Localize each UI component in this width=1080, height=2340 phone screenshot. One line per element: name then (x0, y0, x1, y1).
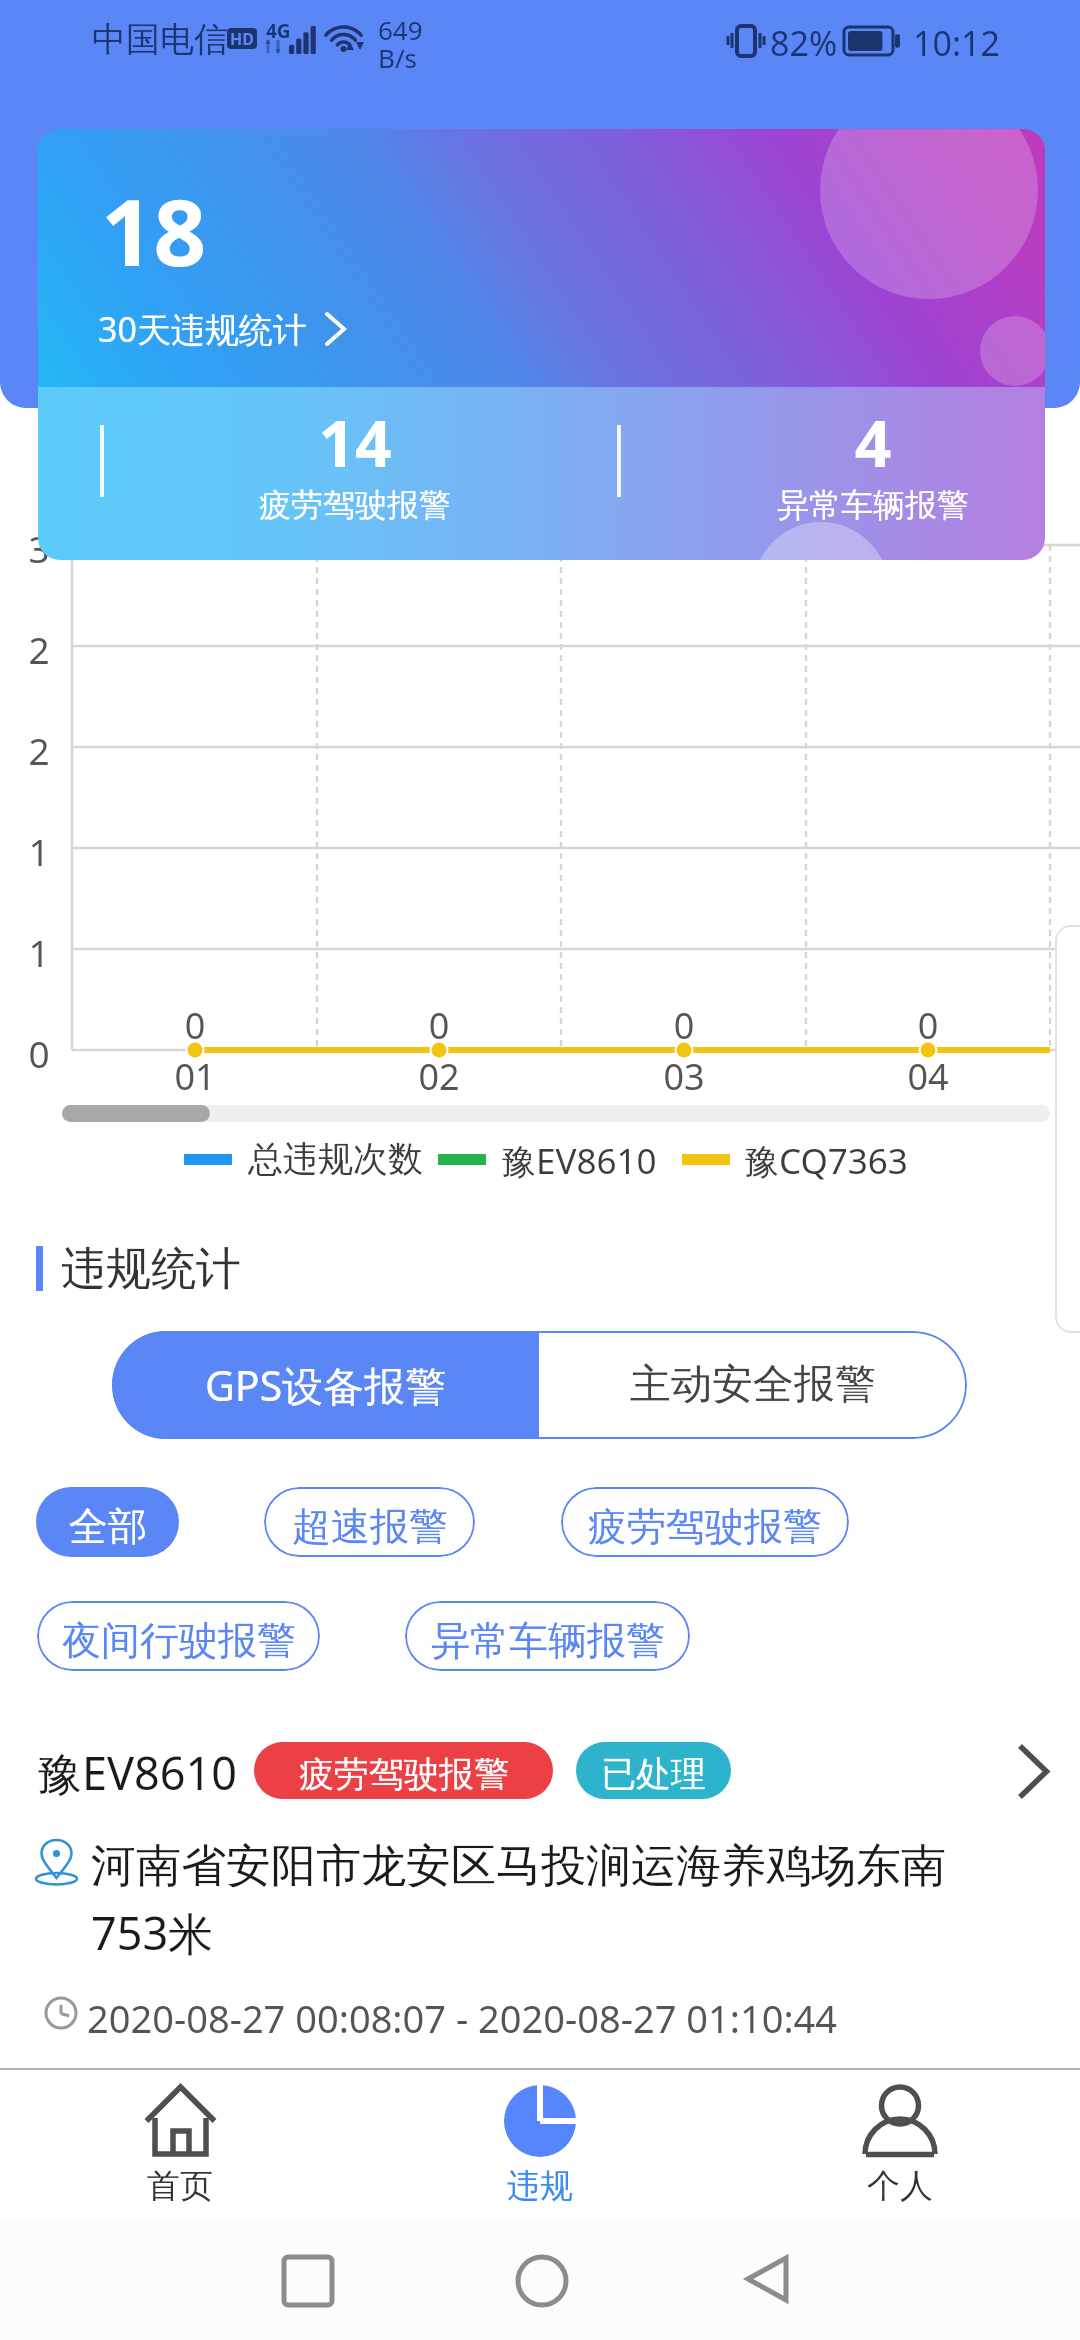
staticText: HD (230, 28, 254, 49)
staticText: 14 (155, 399, 555, 486)
staticText: 02 (389, 1052, 489, 1101)
staticText: 夜间行驶报警 (62, 1616, 296, 1665)
button[interactable]: 全部 (36, 1487, 179, 1557)
staticText: 4 (673, 399, 1045, 486)
staticText: 0 (145, 1001, 245, 1050)
staticText: 河南省安阳市龙安区马投涧运海养鸡场东南753米 (91, 1838, 971, 1963)
staticText: 主动安全报警 (630, 1359, 876, 1411)
staticText: 0 (634, 1001, 734, 1050)
staticText: 2 (24, 624, 54, 674)
staticText: 04 (878, 1052, 978, 1101)
button[interactable]: 疲劳驾驶报警 (561, 1487, 849, 1557)
staticText: 30天违规统计 (98, 306, 307, 352)
staticText: 全部 (69, 1502, 147, 1551)
staticText: 2 (24, 725, 54, 775)
staticText: 1 (24, 927, 54, 977)
button[interactable]: 30天违规统计 (98, 306, 347, 352)
staticText: 豫EV8610 (37, 1742, 237, 1803)
staticText: 10:12 (913, 20, 1000, 66)
staticText: 18 (101, 168, 207, 293)
staticText: 82% (770, 20, 838, 66)
staticText: 649 (378, 12, 423, 47)
button[interactable]: 夜间行驶报警 (37, 1601, 320, 1671)
staticText: 3 (24, 523, 54, 573)
staticText: 异常车辆报警 (673, 485, 1045, 525)
staticText: 疲劳驾驶报警 (299, 1752, 509, 1796)
button[interactable]: Recents (284, 2257, 332, 2305)
staticText: 超速报警 (292, 1502, 448, 1551)
staticText: 异常车辆报警 (431, 1616, 665, 1665)
button[interactable]: 个人 (720, 2070, 1080, 2220)
staticText: 01 (145, 1052, 245, 1101)
staticText: B/s (378, 40, 418, 75)
button[interactable]: Home (515, 2254, 569, 2308)
staticText: 个人 (867, 2165, 933, 2207)
staticText: 疲劳驾驶报警 (588, 1502, 822, 1551)
button[interactable]: 首页 (0, 2070, 360, 2220)
staticText: 违规统计 (61, 1241, 241, 1298)
staticText: 豫EV8610 (501, 1137, 657, 1185)
staticText: 4G (266, 18, 291, 44)
staticText: 03 (634, 1052, 734, 1101)
staticText: GPS设备报警 (205, 1357, 447, 1413)
button[interactable]: 异常车辆报警 (405, 1601, 690, 1671)
staticText: 2020-08-27 00:08:07 - 2020-08-27 01:10:4… (87, 1992, 838, 2044)
staticText: 1 (24, 826, 54, 876)
button[interactable] (0, 1710, 1080, 2040)
button[interactable]: 主动安全报警 (539, 1331, 967, 1439)
staticText: 首页 (147, 2165, 213, 2207)
other: 查看详情 (1017, 1743, 1050, 1800)
button[interactable]: 超速报警 (264, 1487, 475, 1557)
staticText: 已处理 (601, 1752, 706, 1796)
staticText: 中国电信 (92, 18, 228, 61)
button[interactable]: GPS设备报警 (112, 1331, 539, 1439)
staticText: 豫CQ7363 (744, 1137, 908, 1185)
staticText: 0 (389, 1001, 489, 1050)
staticText: 0 (878, 1001, 978, 1050)
staticText: 0 (24, 1028, 54, 1078)
staticText: 疲劳驾驶报警 (155, 485, 555, 525)
button[interactable]: Back (745, 2254, 795, 2304)
button[interactable]: 违规 (360, 2070, 720, 2220)
staticText: 总违规次数 (248, 1137, 423, 1181)
staticText: 违规 (507, 2165, 573, 2207)
